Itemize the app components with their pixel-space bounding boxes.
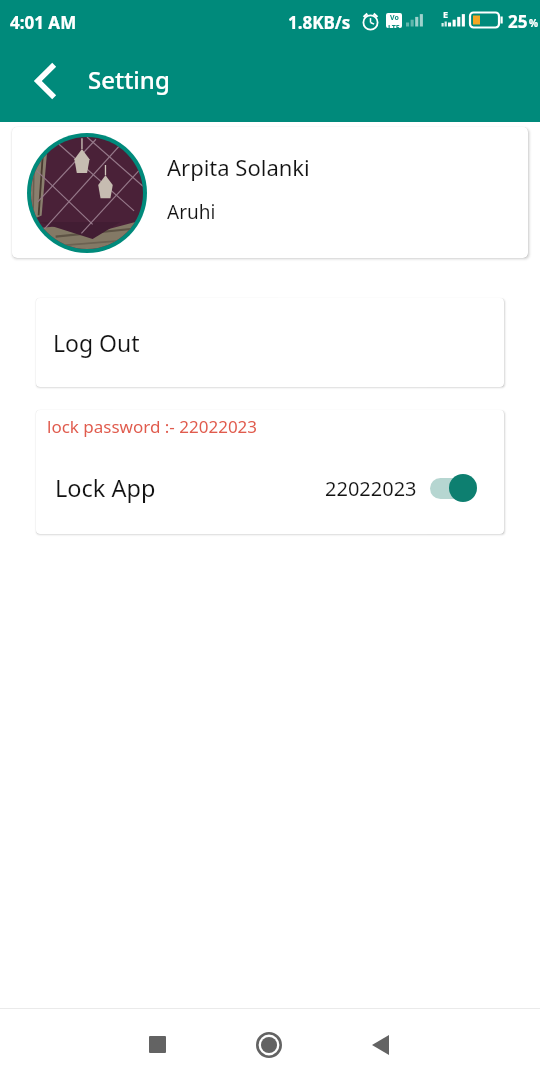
staticText: Lock App [55,472,156,504]
staticText: E [443,8,449,20]
staticText: lock password :- 22022023 [47,415,258,438]
staticText: 1.8KB/s [288,11,351,34]
staticText: 4:01 AM [10,11,77,34]
button[interactable]: Lock App toggle [429,471,481,505]
button[interactable]: Log Out [36,298,504,387]
button[interactable]: Recents [121,1009,193,1080]
staticText: 25 [508,10,528,33]
staticText: 22022023 [325,475,417,502]
button[interactable]: Home [233,1009,305,1080]
button[interactable]: Lock App [36,458,504,518]
button[interactable]: Back [344,1009,416,1080]
staticText: Log Out [53,327,140,358]
button[interactable]: Arpita Solanki [12,127,528,258]
staticText: Arpita Solanki [167,152,310,182]
staticText: Aruhi [167,199,216,225]
staticText: LTE [388,23,400,28]
staticText: Vo [390,13,399,23]
staticText: Setting [88,63,170,96]
staticText: % [529,16,539,30]
button[interactable]: Back [24,60,66,102]
